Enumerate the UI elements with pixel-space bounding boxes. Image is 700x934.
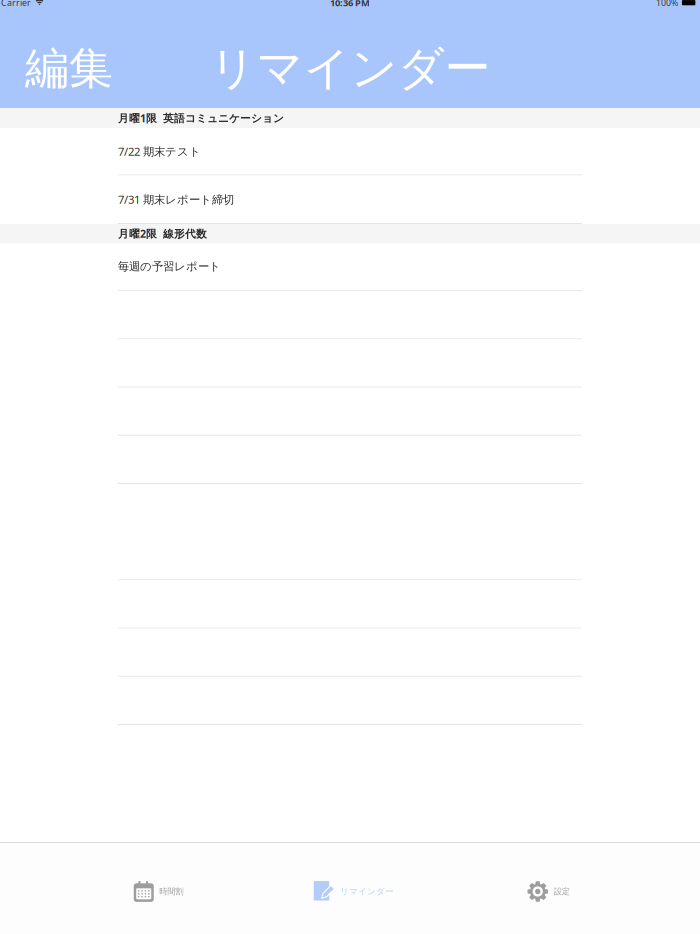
staticText: リマインダー: [209, 39, 490, 97]
staticText: 月曜2限 線形代数: [118, 226, 207, 241]
staticText: 毎週の予習レポート: [118, 259, 221, 274]
button[interactable]: 毎週の予習レポート: [0, 243, 700, 291]
staticText: リマインダー: [340, 886, 393, 897]
button[interactable]: 設定: [517, 867, 580, 910]
staticText: 編集: [25, 41, 113, 96]
button[interactable]: 7/22 期末テスト: [0, 128, 700, 175]
button[interactable]: 編集: [0, 37, 127, 100]
staticText: Carrier: [1, 0, 31, 9]
staticText: 100%: [656, 0, 678, 9]
staticText: 7/31 期末レポート締切: [118, 191, 234, 207]
staticText: 7/22 期末テスト: [118, 143, 201, 159]
staticText: 設定: [554, 886, 570, 897]
staticText: 10:36 PM: [330, 0, 370, 9]
button[interactable]: リマインダー: [304, 867, 403, 910]
button[interactable]: 時間割: [124, 867, 193, 910]
button[interactable]: 7/31 期末レポート締切: [0, 175, 700, 224]
staticText: 時間割: [159, 886, 183, 897]
staticText: 月曜1限 英語コミュニケーション: [118, 111, 284, 125]
